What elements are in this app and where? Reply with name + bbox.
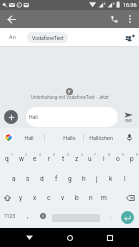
button[interactable]: Add attachment [4,110,18,124]
button[interactable]: z [70,149,84,169]
button[interactable]: u [83,149,97,169]
staticText: p [130,155,134,163]
staticText: u [88,155,92,163]
staticText: w [19,155,24,163]
staticText: , [27,212,29,220]
button[interactable]: Change keyboard language [36,207,49,225]
staticText: V [68,90,71,94]
staticText: 2 [25,153,27,157]
button[interactable]: r [42,149,56,169]
button[interactable]: Send SMS [117,107,139,127]
staticText: Hall [29,114,38,120]
staticText: z [75,155,79,163]
button[interactable]: h [77,169,91,189]
button[interactable]: p [125,149,139,169]
staticText: SMS [125,119,132,123]
staticText: ?123 [4,213,16,219]
button[interactable]: k [104,169,118,189]
button[interactable]: v [56,188,70,208]
staticText: e [33,155,37,163]
staticText: 5 [67,153,69,157]
staticText: Hallo [63,135,76,141]
staticText: f [55,175,58,183]
button[interactable]: c [42,188,56,208]
button[interactable]: Hall [26,107,118,127]
button[interactable]: b [70,188,84,208]
button[interactable]: o [111,149,125,169]
staticText: a [12,175,16,183]
button[interactable]: f [49,169,63,189]
button[interactable]: t [56,149,70,169]
button[interactable]: n [84,188,98,208]
staticText: q [5,155,9,163]
staticText: r [48,155,51,163]
staticText: x [33,194,37,202]
button[interactable]: m [97,188,111,208]
staticText: Hallöchen [89,135,113,141]
staticText: 4 [53,153,55,157]
staticText: j [96,175,98,183]
staticText: 1 [11,153,13,157]
staticText: 9 [122,153,124,157]
staticText: h [82,175,86,183]
staticText: y [19,194,23,202]
button[interactable]: q [0,149,14,169]
button[interactable]: d [35,169,49,189]
button[interactable]: j [90,169,104,189]
staticText: t [62,155,65,163]
button[interactable]: Period [104,207,117,225]
button[interactable]: s [21,169,35,189]
button[interactable]: Hall [10,130,48,146]
staticText: c [47,194,51,202]
staticText: 0 [136,153,138,157]
staticText: 3 [39,153,41,157]
button[interactable]: e [28,149,42,169]
button[interactable]: Backspace [122,188,139,208]
button[interactable]: More options [121,10,139,28]
staticText: o [116,155,120,163]
button[interactable]: Hallo [50,130,88,146]
staticText: 7 [94,153,96,157]
button[interactable]: Shift [0,188,15,208]
button[interactable]: Recent apps [98,228,122,247]
staticText: b [75,194,79,202]
staticText: VodafoneTest [32,35,64,41]
staticText: . [110,212,112,220]
staticText: 6 [81,153,83,157]
staticText: l [124,175,126,183]
button[interactable]: a [7,169,21,189]
staticText: n [89,194,93,202]
staticText: m [101,194,107,202]
button[interactable]: Enter [121,211,134,224]
button[interactable]: i [97,149,111,169]
button[interactable]: VodafoneTest [27,32,68,43]
button[interactable]: Call [105,10,123,28]
staticText: 16:36 [123,2,137,8]
button[interactable]: g [63,169,77,189]
staticText: k [109,175,113,183]
button[interactable]: Add recipient [120,28,139,47]
button[interactable]: Back [17,228,41,247]
staticText: Hall [24,135,34,141]
button[interactable]: Hallöchen [82,130,120,146]
button[interactable]: ?123 [0,207,20,225]
staticText: An [9,34,16,41]
staticText: 8 [108,153,110,157]
staticText: g [68,175,72,183]
button[interactable]: l [118,169,132,189]
button[interactable]: y [14,188,28,208]
button[interactable]: Back [0,10,23,28]
button[interactable]: Home [58,228,82,247]
button[interactable]: Comma [21,207,34,225]
staticText: s [26,175,30,183]
staticText: d [40,175,44,183]
staticText: i [103,155,105,163]
button[interactable]: Voice input [123,131,136,144]
staticText: Unterhaltung mit VodafoneTest · Jetzt [31,95,109,100]
staticText: v [61,194,65,202]
button[interactable]: w [14,149,28,169]
button[interactable]: x [28,188,42,208]
